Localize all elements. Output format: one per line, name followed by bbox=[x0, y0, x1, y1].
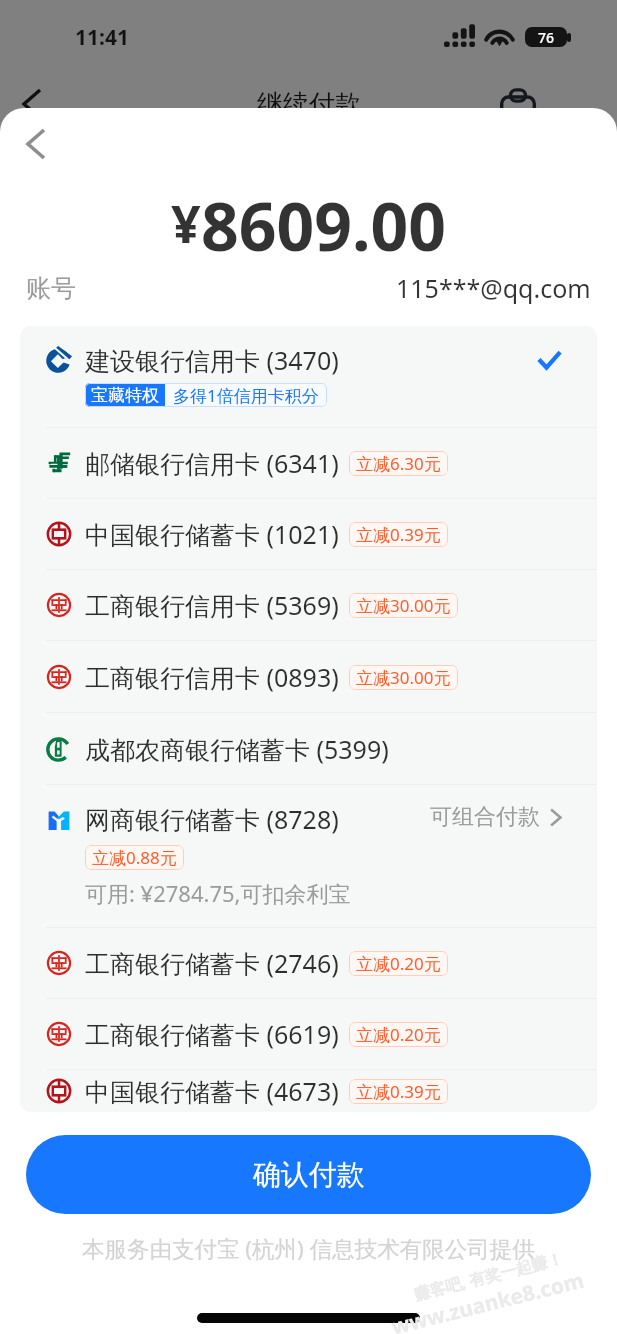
staticText: 邮储银行信用卡 (6341) bbox=[85, 446, 339, 480]
staticText: 多得1倍信用卡积分 bbox=[173, 384, 319, 407]
staticText: 立减0.20元 bbox=[356, 952, 441, 975]
staticText: 工商银行储蓄卡 (6619) bbox=[85, 1017, 339, 1051]
staticText: 工商银行信用卡 (5369) bbox=[85, 588, 339, 622]
button[interactable]: 邮储银行信用卡 (6341) bbox=[20, 428, 597, 498]
button[interactable]: 网商银行储蓄卡 (8728) bbox=[20, 785, 597, 927]
staticText: 可组合付款 bbox=[430, 803, 540, 831]
staticText: 立减0.88元 bbox=[92, 846, 177, 869]
button[interactable]: Back bbox=[11, 119, 61, 169]
staticText: 宝藏特权 bbox=[91, 385, 159, 406]
staticText: www.zuanke8.com bbox=[388, 1265, 587, 1334]
staticText: 立减0.20元 bbox=[356, 1023, 441, 1046]
button[interactable]: 建设银行信用卡 (3470) bbox=[20, 326, 597, 427]
button[interactable]: 中国银行储蓄卡 (4673) bbox=[20, 1070, 597, 1112]
staticText: 立减30.00元 bbox=[356, 594, 451, 617]
staticText: 立减6.30元 bbox=[356, 452, 441, 475]
staticText: 中国银行储蓄卡 (1021) bbox=[85, 517, 339, 551]
button[interactable]: 工商银行信用卡 (5369) bbox=[20, 570, 597, 640]
button[interactable]: 成都农商银行储蓄卡 (5399) bbox=[20, 713, 597, 784]
button[interactable]: 确认付款 bbox=[26, 1135, 591, 1214]
staticText: 确认付款 bbox=[253, 1157, 365, 1192]
staticText: 继续付款 bbox=[257, 88, 361, 121]
staticText: 中国银行储蓄卡 (4673) bbox=[85, 1074, 339, 1108]
staticText: 立减30.00元 bbox=[356, 666, 451, 689]
staticText: ¥ bbox=[171, 187, 201, 258]
staticText: 可用: ¥2784.75,可扣余利宝 bbox=[85, 878, 351, 908]
button[interactable]: 工商银行信用卡 (0893) bbox=[20, 641, 597, 712]
staticText: 赚客吧, 有奖一起赚！ bbox=[412, 1247, 565, 1305]
staticText: 建设银行信用卡 (3470) bbox=[85, 343, 339, 377]
staticText: 立减0.39元 bbox=[356, 523, 441, 546]
button[interactable]: 工商银行储蓄卡 (6619) bbox=[20, 999, 597, 1069]
staticText: 工商银行储蓄卡 (2746) bbox=[85, 946, 339, 980]
staticText: 成都农商银行储蓄卡 (5399) bbox=[85, 732, 389, 766]
staticText: 工商银行信用卡 (0893) bbox=[85, 660, 339, 694]
button[interactable]: 中国银行储蓄卡 (1021) bbox=[20, 499, 597, 569]
button[interactable]: 工商银行储蓄卡 (2746) bbox=[20, 928, 597, 998]
staticText: 本服务由支付宝 (杭州) 信息技术有限公司提供 bbox=[82, 1233, 535, 1264]
staticText: 115***@qq.com bbox=[396, 271, 591, 305]
staticText: 11:41 bbox=[75, 23, 129, 52]
staticText: 网商银行储蓄卡 (8728) bbox=[85, 802, 339, 836]
staticText: 立减0.39元 bbox=[356, 1080, 441, 1103]
staticText: 账号 bbox=[26, 273, 76, 304]
staticText: 8609.00 bbox=[201, 180, 447, 260]
staticText: 76 bbox=[538, 28, 555, 47]
